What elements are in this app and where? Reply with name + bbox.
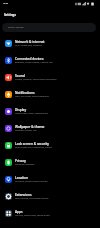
staticText: Privacy	[15, 159, 26, 163]
staticText: Permission manager	[15, 163, 35, 166]
staticText: Home screen, Flash, Navigation bar	[15, 112, 49, 115]
staticText: App info, Default apps, Special access	[15, 214, 51, 217]
staticText: Notifications	[15, 91, 35, 95]
staticText: My places, Recent location request	[15, 180, 48, 183]
button[interactable]: Apps	[0, 205, 100, 222]
button[interactable]: Extensions	[0, 188, 100, 205]
button[interactable]: Search settings	[2, 23, 96, 32]
staticText: Smart sharing, Personalized service	[15, 197, 49, 200]
button[interactable]: Privacy	[0, 154, 100, 171]
staticText: Wallpaper & theme	[15, 125, 45, 129]
staticText: Wi-Fi, Mobile data, Tethering	[15, 44, 42, 47]
button[interactable]: Wallpaper & theme	[0, 120, 100, 137]
button[interactable]: Lock screen & security	[0, 137, 100, 154]
staticText: Settings	[4, 13, 16, 17]
button[interactable]: Network & internet	[0, 35, 100, 52]
staticText: Network & internet	[15, 40, 45, 44]
staticText: Location	[15, 176, 29, 180]
staticText: Volume, Ringtone, Sound quality and effe…	[15, 78, 57, 81]
staticText: Sound	[15, 74, 25, 78]
staticText: Connected devices	[15, 57, 44, 61]
staticText: Wallpaper, Theme, Icon	[15, 129, 37, 132]
staticText: Display	[15, 108, 27, 112]
staticText: Apps, lock screen, Brief notifications	[15, 95, 49, 98]
button[interactable]: Sound	[0, 69, 100, 86]
staticText: Apps	[15, 210, 23, 214]
button[interactable]: Connected devices	[0, 52, 100, 69]
staticText: 10:36	[3, 2, 8, 5]
button[interactable]: Display	[0, 103, 100, 120]
staticText: Lock screen & security	[15, 142, 49, 146]
staticText: Bluetooth, Screen sharing, Android Auto	[15, 61, 53, 64]
button[interactable]: Location	[0, 171, 100, 188]
staticText: Search settings	[8, 26, 24, 29]
staticText: Select screen lock, Fingerprints, Contro…	[15, 146, 53, 149]
staticText: Extensions	[15, 193, 32, 197]
button[interactable]: Notifications	[0, 86, 100, 103]
